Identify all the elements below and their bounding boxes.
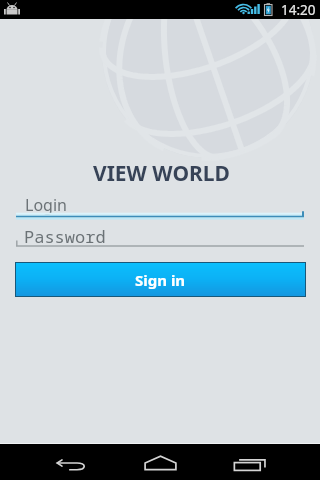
button[interactable]: Back bbox=[36, 444, 106, 480]
button[interactable]: Password bbox=[16, 223, 304, 249]
staticText: 14:20 bbox=[281, 1, 316, 19]
staticText: VIEW WORLD bbox=[93, 159, 230, 188]
button[interactable]: Sign in bbox=[16, 263, 305, 296]
button[interactable]: Home bbox=[125, 444, 195, 480]
staticText: Sign in bbox=[135, 270, 186, 290]
staticText: Login bbox=[25, 194, 67, 216]
button[interactable]: Login bbox=[16, 192, 304, 218]
staticText: Password bbox=[24, 225, 106, 248]
button[interactable]: Recent apps bbox=[215, 444, 285, 480]
